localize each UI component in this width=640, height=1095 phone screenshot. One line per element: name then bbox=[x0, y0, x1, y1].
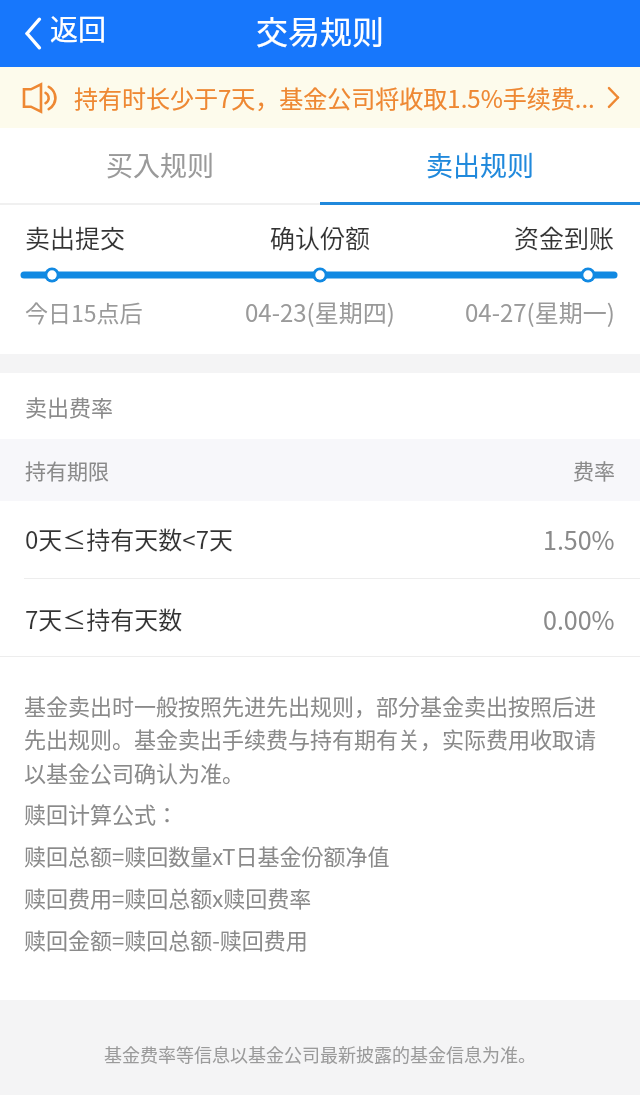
button[interactable]: 买入规则 bbox=[0, 128, 320, 205]
staticText: 费率 bbox=[573, 455, 615, 485]
button[interactable]: 持有时长少于7天，基金公司将收取1.5%手续费... bbox=[0, 67, 640, 128]
button[interactable]: 卖出规则 bbox=[320, 128, 640, 205]
staticText: 7天≤持有天数 bbox=[25, 601, 183, 636]
staticText: 0.00% bbox=[543, 601, 615, 637]
staticText: 04-23(星期四) bbox=[245, 294, 395, 329]
staticText: 资金到账 bbox=[514, 219, 615, 255]
staticText: 卖出费率 bbox=[25, 390, 114, 422]
staticText: 持有期限 bbox=[25, 455, 109, 485]
staticText: 返回 bbox=[50, 8, 107, 49]
staticText: 赎回总额=赎回数量xT日基金份额净值 bbox=[24, 839, 390, 871]
staticText: 卖出提交 bbox=[25, 219, 126, 255]
staticText: 赎回费用=赎回总额x赎回费率 bbox=[24, 881, 312, 913]
staticText: 持有时长少于7天，基金公司将收取1.5%手续费... bbox=[74, 80, 599, 115]
staticText: 交易规则 bbox=[256, 7, 385, 53]
staticText: 买入规则 bbox=[106, 145, 214, 184]
staticText: 确认份额 bbox=[270, 219, 371, 255]
staticText: 1.50% bbox=[543, 521, 615, 557]
staticText: 04-27(星期一) bbox=[465, 294, 615, 329]
staticText: 0天≤持有天数<7天 bbox=[25, 521, 233, 556]
button[interactable]: 返回 bbox=[17, 0, 115, 67]
button[interactable]: 7天≤持有天数 bbox=[0, 581, 640, 658]
staticText: 卖出规则 bbox=[426, 145, 534, 184]
other: 查看详情 bbox=[607, 87, 620, 108]
button[interactable]: 0天≤持有天数<7天 bbox=[0, 501, 640, 578]
staticText: 赎回计算公式： bbox=[24, 797, 179, 829]
staticText: 赎回金额=赎回总额-赎回费用 bbox=[24, 923, 308, 955]
staticText: 今日15点后 bbox=[25, 295, 143, 328]
staticText: 基金卖出时一般按照先进先出规则，部分基金卖出按照后进先出规则。基金卖出手续费与持… bbox=[24, 689, 616, 789]
staticText: 基金费率等信息以基金公司最新披露的基金信息为准。 bbox=[104, 1041, 536, 1067]
